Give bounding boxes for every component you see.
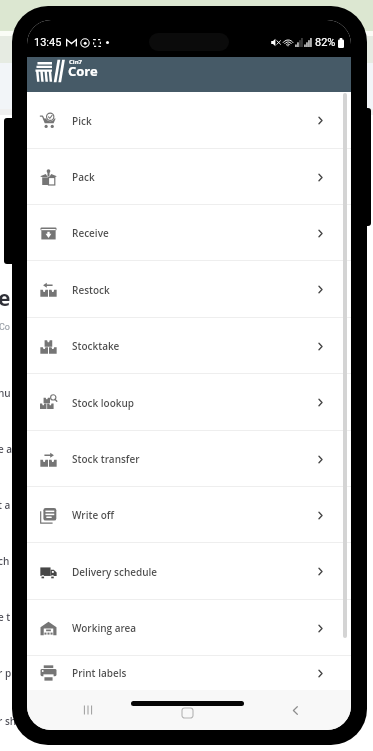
staticText: Working area [72,621,137,635]
button[interactable]: Home [131,701,244,706]
staticText: nu [0,386,11,400]
staticText: r ship [0,714,26,728]
button[interactable]: Back [288,703,303,718]
staticText: ch [0,554,10,568]
button[interactable]: Receive [27,205,351,261]
staticText: Delivery schedule [72,565,158,579]
button[interactable]: Restock [27,261,351,318]
staticText: e t [0,610,11,624]
staticText: Restock [72,283,110,297]
button[interactable]: Cin7 Core [34,59,100,83]
staticText: r p [0,666,12,680]
staticText: 82% [315,36,336,49]
button[interactable]: Stock lookup [27,374,351,431]
staticText: Core [68,62,98,80]
staticText: Stock transfer [72,452,140,466]
staticText: Stock lookup [72,396,135,410]
staticText: t a [0,498,11,512]
staticText: Pack [72,170,95,184]
button[interactable]: Delivery schedule [27,543,351,600]
staticText: Cin7 [69,58,83,66]
staticText: e a [0,442,13,456]
staticText: Pick [72,114,92,128]
staticText: Co [0,322,10,333]
staticText: Write off [72,508,115,522]
button[interactable]: Print labels [27,656,351,690]
button[interactable]: Recent apps [79,701,97,719]
staticText: Print labels [72,666,127,680]
button[interactable]: Pack [27,149,351,205]
staticText: 13:45 [34,36,62,49]
staticText: e [0,284,11,313]
button[interactable]: Stock transfer [27,431,351,487]
staticText: Stocktake [72,339,120,353]
button[interactable]: Stocktake [27,318,351,374]
staticText: Receive [72,226,109,240]
button[interactable]: Working area [27,600,351,656]
button[interactable]: Pick [27,92,351,149]
button[interactable]: Write off [27,487,351,543]
